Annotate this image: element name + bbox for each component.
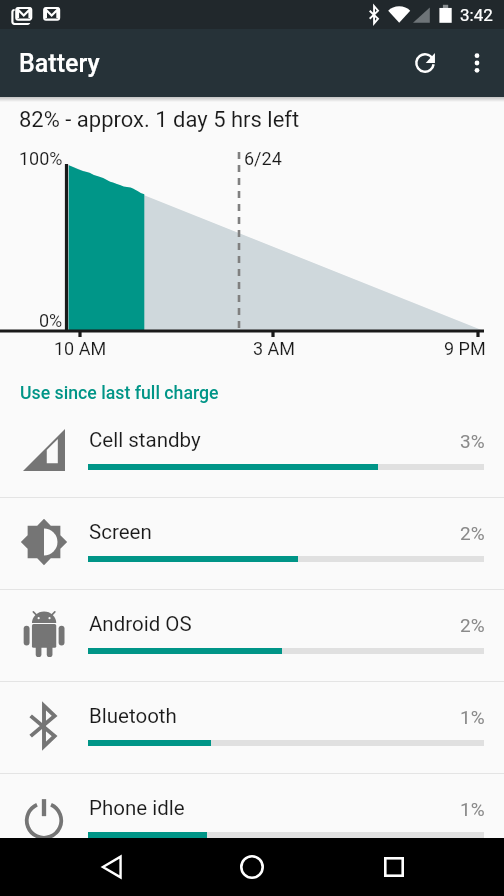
staticText: Android OS (89, 612, 192, 636)
staticText: Battery (19, 49, 100, 78)
button[interactable]: Home (212, 838, 292, 896)
staticText: Cell standby (89, 428, 201, 452)
staticText: 3:42 (460, 5, 493, 25)
staticText: 2% (460, 614, 485, 636)
staticText: 3% (460, 430, 485, 452)
staticText: 2% (460, 522, 485, 544)
staticText: 82% - approx. 1 day 5 hrs left (19, 107, 300, 133)
button[interactable]: More options (450, 36, 504, 90)
button[interactable]: Cell standby (0, 405, 504, 497)
button[interactable]: Android OS (0, 589, 504, 681)
button[interactable]: Screen (0, 497, 504, 589)
staticText: Screen (89, 520, 152, 544)
button[interactable]: Recent apps (354, 838, 434, 896)
staticText: 6/24 (244, 148, 282, 169)
button[interactable]: Back (71, 838, 151, 896)
button[interactable]: Refresh (398, 36, 452, 90)
staticText: 1% (460, 706, 485, 728)
staticText: 0% (39, 310, 63, 331)
button[interactable]: Phone idle (0, 773, 504, 865)
staticText: 3 AM (253, 338, 296, 359)
staticText: 9 PM (444, 338, 486, 359)
staticText: 100% (19, 148, 63, 169)
staticText: Use since last full charge (20, 383, 219, 404)
button[interactable]: Bluetooth (0, 681, 504, 773)
staticText: Bluetooth (89, 704, 177, 728)
staticText: 1% (460, 798, 485, 820)
staticText: Phone idle (89, 796, 185, 820)
staticText: 10 AM (54, 338, 107, 359)
